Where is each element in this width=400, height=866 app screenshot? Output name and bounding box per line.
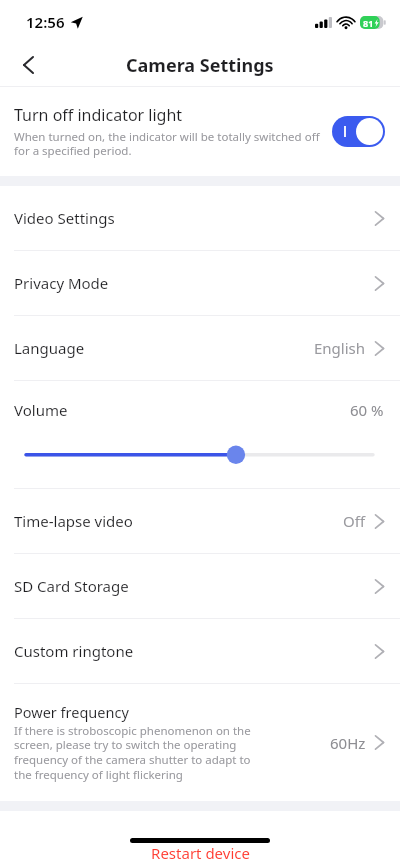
button[interactable]: Power frequency <box>0 684 400 801</box>
button[interactable]: Privacy Mode <box>0 251 400 315</box>
staticText: Privacy Mode <box>14 273 109 293</box>
button[interactable]: Custom ringtone <box>0 619 400 683</box>
staticText: SD Card Storage <box>14 576 129 596</box>
staticText: 81 <box>363 17 374 29</box>
staticText: 60Hz <box>330 733 366 753</box>
button[interactable]: Volume slider <box>0 438 400 468</box>
button[interactable]: Language <box>0 316 400 380</box>
button[interactable]: Restart device <box>151 843 250 863</box>
staticText: When turned on, the indicator will be to… <box>14 129 320 159</box>
button[interactable]: Back <box>10 47 46 83</box>
staticText: Custom ringtone <box>14 641 134 661</box>
staticText: Time-lapse video <box>14 511 133 531</box>
staticText: Power frequency <box>14 702 129 722</box>
staticText: English <box>314 338 366 358</box>
button[interactable]: Turn off indicator light toggle <box>332 116 385 147</box>
staticText: If there is stroboscopic phenomenon on t… <box>14 723 260 783</box>
staticText: Volume <box>14 400 68 420</box>
button[interactable]: Time-lapse video <box>0 489 400 553</box>
button[interactable]: Video Settings <box>0 186 400 250</box>
staticText: Camera Settings <box>126 53 274 78</box>
staticText: Off <box>343 511 366 531</box>
staticText: 60 % <box>350 400 384 420</box>
staticText: 12:56 <box>26 12 65 32</box>
staticText: Language <box>14 338 85 358</box>
button[interactable]: SD Card Storage <box>0 554 400 618</box>
staticText: Video Settings <box>14 208 115 228</box>
button[interactable]: Turn off indicator light <box>0 87 400 176</box>
staticText: Turn off indicator light <box>14 104 183 126</box>
